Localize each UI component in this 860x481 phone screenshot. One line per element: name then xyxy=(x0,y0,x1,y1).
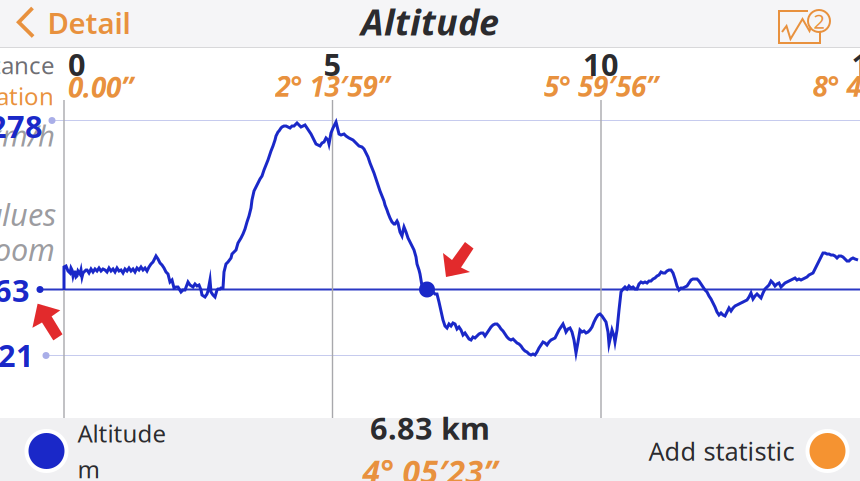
staticText: Add statistic xyxy=(648,434,794,468)
staticText: 5 xyxy=(323,44,341,84)
staticText: Detail xyxy=(47,3,130,42)
button[interactable]: Altitude xyxy=(13,419,160,481)
staticText: Distance xyxy=(0,49,55,81)
staticText: Duration xyxy=(0,80,54,112)
staticText: Show values xyxy=(0,194,56,234)
staticText: 2 xyxy=(813,8,824,34)
staticText: avg.km/h xyxy=(0,115,55,154)
staticText: 15 xyxy=(851,44,860,84)
button[interactable]: Charts xyxy=(772,4,838,60)
staticText: 2° 13′59” xyxy=(275,67,389,105)
staticText: 6.83 km xyxy=(370,407,490,448)
staticText: m xyxy=(77,453,99,481)
button[interactable]: Detail xyxy=(0,0,146,46)
staticText: 63 xyxy=(0,270,30,310)
staticText: -21 xyxy=(0,335,34,375)
staticText: 4° 05′23” xyxy=(362,450,497,481)
staticText: 10 xyxy=(583,44,619,84)
staticText: 8° 44′12” xyxy=(812,67,860,105)
staticText: Tap to zoom xyxy=(0,229,55,269)
staticText: Altitude xyxy=(361,0,499,45)
staticText: 278 xyxy=(0,106,43,146)
staticText: Altitude xyxy=(77,417,166,449)
staticText: 0 xyxy=(68,44,86,84)
button[interactable]: Add statistic xyxy=(638,419,859,481)
staticText: 0.00” xyxy=(68,68,133,106)
staticText: 5° 59′56” xyxy=(544,67,658,105)
